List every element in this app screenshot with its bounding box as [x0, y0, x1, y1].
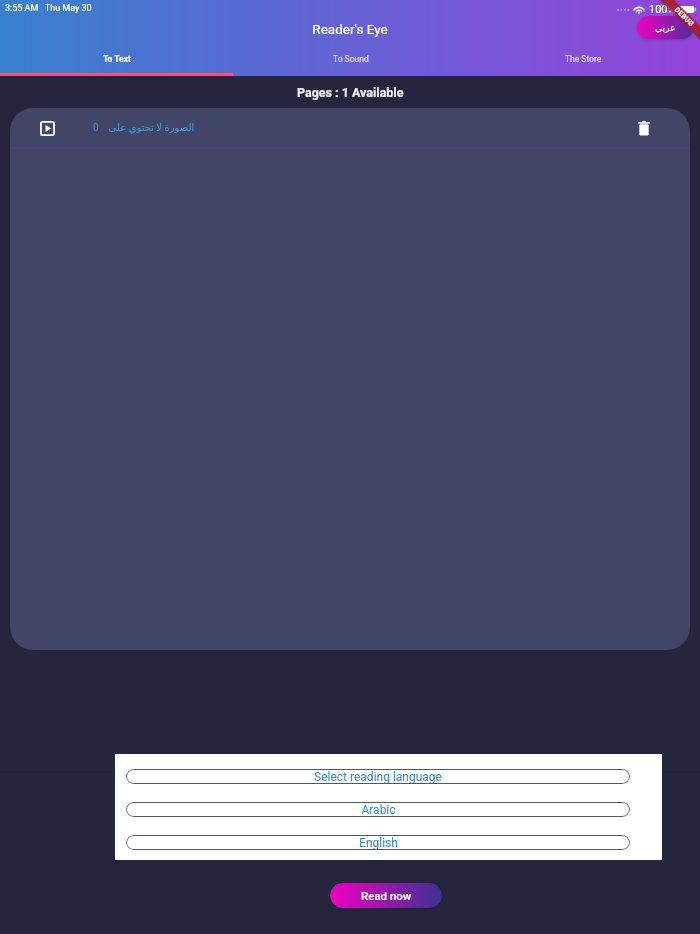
staticText: To Text: [103, 54, 131, 64]
staticText: Arabic: [361, 803, 396, 817]
staticText: 0 الصورة لا تحتوي على: [93, 122, 195, 134]
button[interactable]: English: [126, 835, 630, 850]
button[interactable]: To Sound: [234, 47, 467, 73]
button[interactable]: Play page: [36, 117, 58, 139]
staticText: English: [359, 836, 398, 850]
staticText: 100%: [649, 3, 676, 16]
button[interactable]: To Text: [0, 47, 234, 73]
staticText: عربي: [655, 23, 676, 33]
button[interactable]: Arabic: [126, 802, 630, 817]
staticText: DEBUG: [673, 6, 695, 28]
staticText: To Sound: [333, 54, 369, 64]
button[interactable]: Delete page: [632, 116, 656, 140]
staticText: 3:55 AM Thu May 30: [5, 3, 92, 14]
staticText: Read now: [361, 889, 412, 902]
staticText: Select reading language: [314, 770, 442, 784]
staticText: The Store: [565, 54, 602, 64]
button[interactable]: Select reading language: [126, 769, 630, 784]
button[interactable]: The Store: [467, 47, 700, 73]
button[interactable]: Read now: [330, 883, 442, 908]
staticText: Reader's Eye: [0, 21, 700, 37]
button[interactable]: عربي: [637, 16, 694, 39]
staticText: Pages : 1 Available: [297, 85, 404, 100]
